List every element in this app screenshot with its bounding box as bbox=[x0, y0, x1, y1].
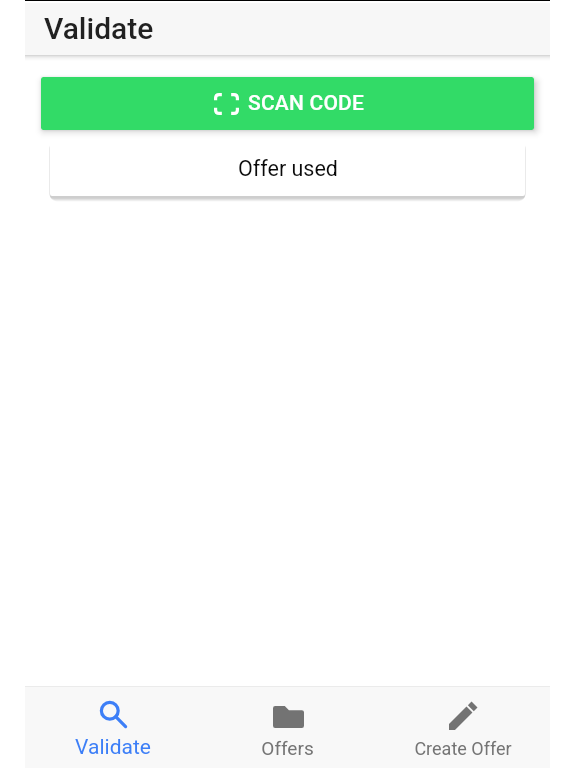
staticText: Offers bbox=[261, 737, 314, 759]
button[interactable]: SCAN CODE bbox=[41, 77, 534, 130]
button[interactable]: Offer used bbox=[50, 141, 525, 196]
button[interactable]: Validate bbox=[25, 687, 200, 768]
button[interactable]: Offers bbox=[200, 687, 375, 768]
staticText: Validate bbox=[44, 11, 154, 46]
staticText: Validate bbox=[75, 735, 151, 760]
staticText: Create Offer bbox=[414, 738, 512, 759]
button[interactable]: Create Offer bbox=[375, 687, 550, 768]
staticText: SCAN CODE bbox=[248, 91, 365, 116]
staticText: Offer used bbox=[238, 156, 338, 181]
